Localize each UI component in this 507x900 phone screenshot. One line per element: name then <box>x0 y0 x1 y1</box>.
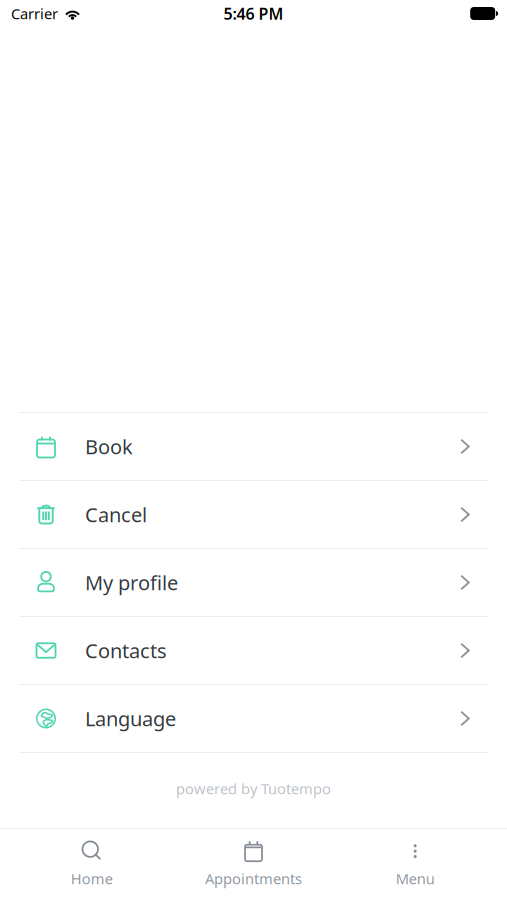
button[interactable]: My profile <box>0 549 507 617</box>
staticText: Home <box>71 869 113 888</box>
staticText: Appointments <box>205 869 302 888</box>
staticText: powered by Tuotempo <box>176 779 331 798</box>
staticText: Language <box>85 705 176 732</box>
staticText: 5:46 PM <box>223 3 283 24</box>
button[interactable]: Home <box>11 827 173 900</box>
button[interactable]: Book <box>0 413 507 481</box>
staticText: Contacts <box>85 637 167 664</box>
button[interactable]: Language <box>0 685 507 753</box>
button[interactable]: Contacts <box>0 617 507 685</box>
staticText: My profile <box>85 569 178 596</box>
button[interactable]: Appointments <box>173 827 334 900</box>
button[interactable]: Cancel <box>0 481 507 549</box>
staticText: Menu <box>396 869 435 888</box>
staticText: Carrier <box>11 4 58 23</box>
button[interactable]: Menu <box>334 827 496 900</box>
staticText: Cancel <box>85 501 147 528</box>
staticText: Book <box>85 433 133 460</box>
